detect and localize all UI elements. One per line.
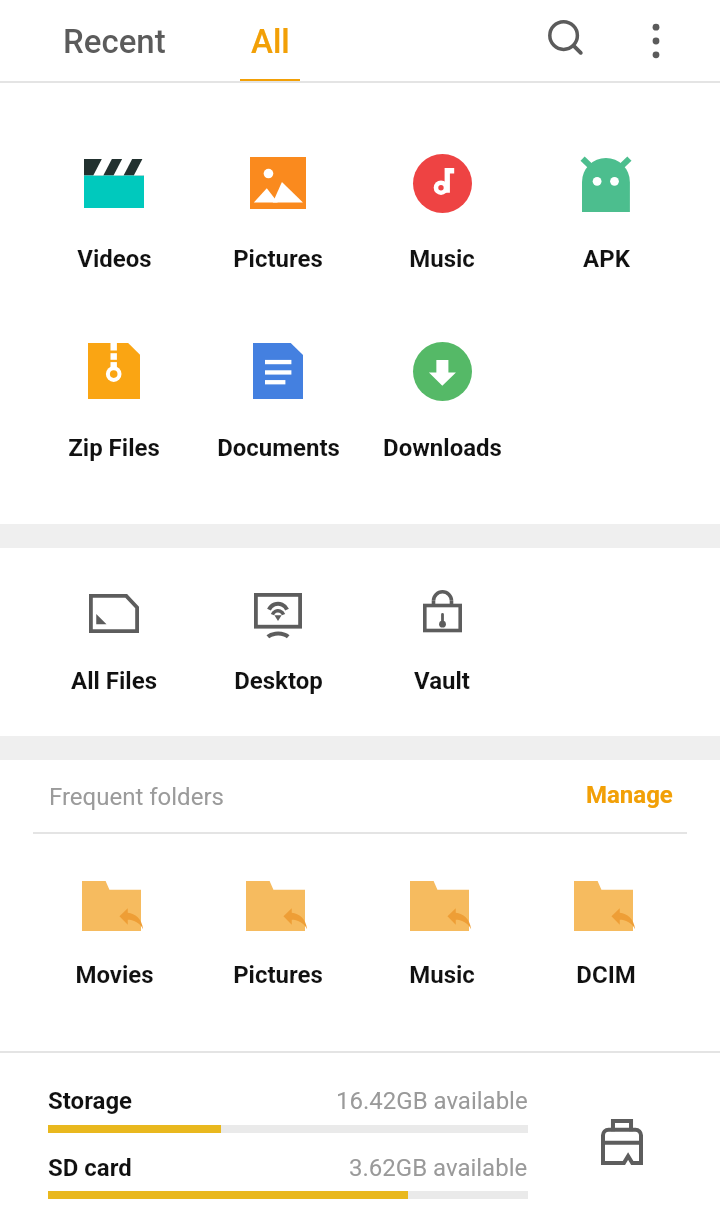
staticText: Recent xyxy=(63,22,166,61)
button[interactable]: Videos xyxy=(32,137,196,265)
staticText: Vault xyxy=(414,667,470,695)
staticText: Movies xyxy=(75,961,154,989)
button[interactable]: Recent xyxy=(45,0,183,81)
button[interactable]: Movies xyxy=(32,860,196,988)
staticText: All xyxy=(251,22,290,61)
button[interactable]: Music xyxy=(360,137,524,265)
staticText: Music xyxy=(409,245,475,273)
staticText: Music xyxy=(409,961,475,989)
staticText: Manage xyxy=(586,781,673,809)
staticText: Pictures xyxy=(233,245,323,273)
staticText: DCIM xyxy=(576,961,636,989)
staticText: SD card xyxy=(48,1154,132,1182)
button[interactable]: Pictures xyxy=(196,860,360,988)
staticText: Frequent folders xyxy=(49,783,224,811)
staticText: 3.62GB available xyxy=(349,1154,528,1182)
button[interactable]: More options xyxy=(620,5,692,77)
button[interactable]: Documents xyxy=(196,325,360,453)
staticText: All Files xyxy=(71,667,157,695)
button[interactable]: APK xyxy=(524,137,688,265)
button[interactable]: Music xyxy=(360,860,524,988)
button[interactable]: Pictures xyxy=(196,137,360,265)
staticText: Documents xyxy=(217,434,340,462)
button[interactable]: Desktop xyxy=(196,567,360,695)
staticText: 16.42GB available xyxy=(336,1087,528,1115)
button[interactable]: All Files xyxy=(32,567,196,695)
button[interactable]: All xyxy=(222,0,318,81)
button[interactable]: Frequent folders xyxy=(33,766,333,828)
button[interactable]: Manage xyxy=(571,764,687,826)
button[interactable]: Downloads xyxy=(360,325,524,453)
staticText: Storage xyxy=(48,1087,133,1115)
button[interactable]: DCIM xyxy=(524,860,688,988)
staticText: Downloads xyxy=(383,434,502,462)
button[interactable]: Clean up storage xyxy=(557,1079,687,1205)
button[interactable]: Zip Files xyxy=(32,325,196,453)
staticText: Zip Files xyxy=(68,434,160,462)
button[interactable]: Vault xyxy=(360,567,524,695)
staticText: Desktop xyxy=(234,667,323,695)
staticText: Videos xyxy=(77,245,152,273)
button[interactable]: Search xyxy=(530,2,602,74)
staticText: Pictures xyxy=(233,961,323,989)
staticText: APK xyxy=(583,245,630,273)
